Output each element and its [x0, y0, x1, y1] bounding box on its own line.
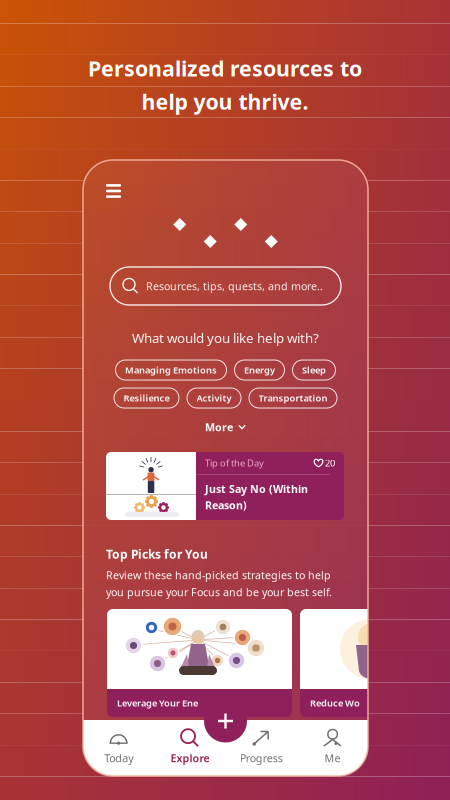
- staticText: Managing Emotions: [125, 364, 217, 376]
- button[interactable]: Activity: [187, 388, 241, 408]
- staticText: Energy: [244, 364, 275, 376]
- staticText: More: [205, 420, 233, 434]
- button[interactable]: Tip of the Day: [106, 452, 344, 520]
- button[interactable]: Add: [202, 698, 248, 744]
- button[interactable]: Progress: [225, 720, 297, 776]
- staticText: Resources, tips, quests, and more..: [146, 279, 323, 293]
- staticText: Sleep: [302, 364, 326, 376]
- button[interactable]: Sleep: [292, 360, 335, 380]
- staticText: 20: [323, 457, 335, 469]
- button[interactable]: Resources, tips, quests, and more..: [110, 267, 341, 305]
- staticText: Top Picks for You: [106, 546, 208, 562]
- staticText: Reason): [205, 498, 247, 512]
- staticText: Me: [324, 751, 340, 765]
- staticText: Reduce Wo: [310, 697, 360, 709]
- staticText: Transportation: [258, 392, 327, 404]
- staticText: Activity: [196, 392, 231, 404]
- staticText: Explore: [170, 751, 209, 765]
- staticText: you pursue your Focus and be your best s…: [106, 585, 332, 599]
- button[interactable]: Transportation: [249, 388, 337, 408]
- button[interactable]: Reduce Wo: [300, 609, 450, 717]
- staticText: Review these hand-picked strategies to h…: [106, 568, 331, 582]
- staticText: Just Say No (Within: [205, 482, 308, 496]
- staticText: Personalized resources to: [88, 54, 362, 82]
- button[interactable]: Managing Emotions: [115, 360, 226, 380]
- staticText: Resilience: [123, 392, 169, 404]
- button[interactable]: Resilience: [114, 388, 179, 408]
- button[interactable]: Explore: [154, 720, 225, 776]
- staticText: Today: [104, 751, 133, 765]
- button[interactable]: Menu: [101, 179, 126, 203]
- button[interactable]: Me: [297, 720, 368, 776]
- button[interactable]: Energy: [234, 360, 284, 380]
- button[interactable]: More: [197, 416, 254, 438]
- staticText: What would you like help with?: [132, 329, 319, 347]
- staticText: help you thrive.: [141, 87, 308, 116]
- staticText: Leverage Your Ene: [117, 697, 198, 709]
- button[interactable]: Today: [83, 720, 154, 776]
- staticText: Tip of the Day: [205, 457, 264, 469]
- button[interactable]: Leverage Your Ene: [107, 609, 292, 717]
- staticText: Progress: [240, 751, 283, 765]
